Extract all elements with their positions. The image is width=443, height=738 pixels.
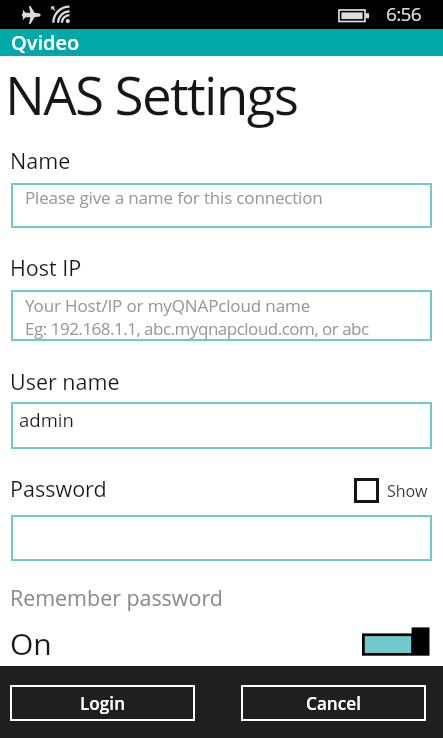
button[interactable]: admin <box>11 402 432 449</box>
staticText: Qvideo <box>11 29 80 56</box>
staticText: Please give a name for this connection <box>25 186 323 209</box>
staticText: Cancel <box>306 692 361 715</box>
staticText: NAS Settings <box>5 58 298 130</box>
staticText: Your Host/IP or myQNAPcloud name <box>25 294 311 317</box>
button[interactable] <box>11 515 432 561</box>
button[interactable]: Please give a name for this connection <box>11 183 432 228</box>
staticText: Eg: 192.168.1.1, abc.myqnapcloud.com, or… <box>25 317 369 340</box>
staticText: admin <box>19 407 74 432</box>
button[interactable]: Your Host/IP or myQNAPcloud name <box>11 290 432 341</box>
staticText: Show <box>387 480 428 502</box>
button[interactable]: Cancel <box>241 685 426 721</box>
staticText: Host IP <box>10 253 82 282</box>
button[interactable]: Show <box>354 478 428 503</box>
staticText: On <box>10 623 52 664</box>
button[interactable]: Remember password toggle <box>362 626 430 657</box>
staticText: Password <box>10 474 107 503</box>
staticText: Name <box>10 146 71 175</box>
staticText: 6:56 <box>386 1 421 27</box>
staticText: Login <box>80 692 126 715</box>
button[interactable]: Login <box>10 685 195 721</box>
staticText: Remember password <box>10 583 223 612</box>
staticText: User name <box>10 367 120 396</box>
